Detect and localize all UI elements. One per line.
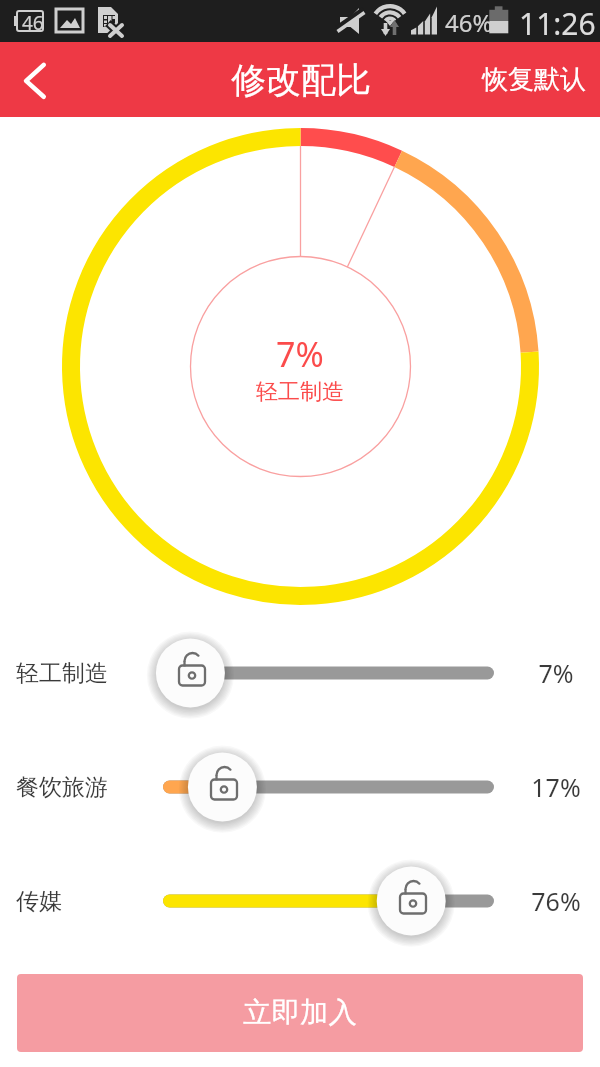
button[interactable]: Lock 传媒	[376, 864, 446, 934]
staticText: 46%	[445, 6, 493, 39]
staticText: 餐饮旅游	[16, 773, 108, 802]
staticText: 17%	[531, 770, 581, 804]
button[interactable]: 恢复默认	[482, 63, 586, 96]
staticText: 传媒	[16, 887, 62, 916]
button[interactable]: 立即加入	[17, 974, 583, 1052]
staticText: 46	[22, 10, 44, 36]
staticText: 修改配比	[231, 58, 371, 102]
staticText: 立即加入	[243, 995, 357, 1031]
button[interactable]: Lock 餐饮旅游	[187, 750, 257, 820]
staticText: 76%	[531, 884, 581, 918]
button[interactable]: Lock 轻工制造	[155, 636, 225, 706]
staticText: 轻工制造	[16, 659, 108, 688]
staticText: 7%	[276, 331, 324, 377]
staticText: 轻工制造	[256, 378, 344, 406]
staticText: 恢复默认	[482, 63, 586, 96]
staticText: 7%	[538, 656, 574, 690]
staticText: 11:26	[519, 3, 596, 44]
button[interactable]: Back	[0, 47, 66, 113]
